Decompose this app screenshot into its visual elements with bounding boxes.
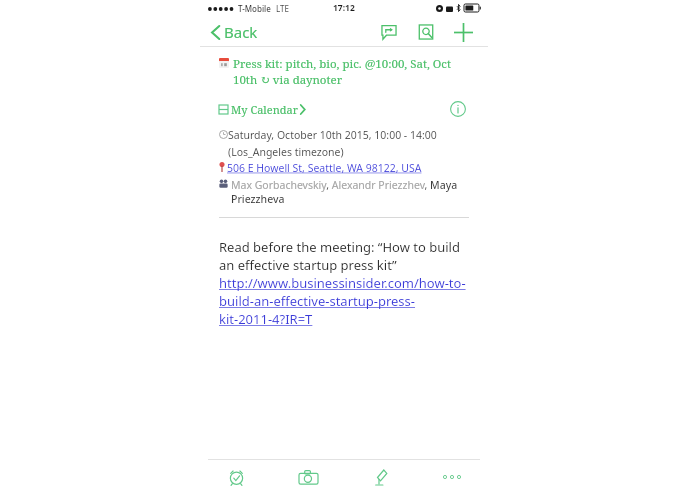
- button[interactable]: Camera: [272, 460, 344, 494]
- button[interactable]: Event info: [447, 98, 469, 120]
- staticText: Press kit: pitch, bio, pic. @10:00, Sat,…: [233, 56, 469, 87]
- staticText: Saturday, October 10th 2015, 10:00 - 14:…: [228, 128, 469, 159]
- staticText: My Calendar: [231, 102, 298, 117]
- staticText: LTE: [276, 3, 289, 14]
- button[interactable]: Voice: [344, 460, 416, 494]
- button[interactable]: 506 E Howell St, Seattle, WA 98122, USA: [219, 161, 422, 175]
- button[interactable]: http://www.businessinsider.com/how-to-bu…: [219, 274, 469, 328]
- button[interactable]: Search note: [411, 17, 441, 47]
- staticText: T-Mobile: [238, 3, 271, 14]
- button[interactable]: More options: [416, 460, 488, 494]
- button[interactable]: Add: [448, 17, 478, 47]
- button[interactable]: Reminder: [200, 460, 272, 494]
- button[interactable]: My Calendar: [219, 102, 305, 117]
- button[interactable]: Back: [209, 19, 260, 45]
- button[interactable]: Reply: [374, 17, 404, 47]
- staticText: 506 E Howell St, Seattle, WA 98122, USA: [227, 161, 422, 175]
- staticText: 17:12: [333, 2, 355, 14]
- staticText: Back: [224, 22, 258, 42]
- staticText: Max Gorbachevskiy, Alexandr Priezzhev, M…: [231, 178, 469, 206]
- staticText: Read before the meeting: “How to build a…: [219, 238, 469, 274]
